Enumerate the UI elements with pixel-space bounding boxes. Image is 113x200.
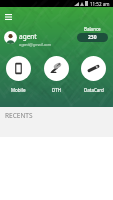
staticText: RECENTS [5, 111, 33, 120]
staticText: DTH [52, 87, 61, 93]
staticText: agent@gmail.com [19, 42, 52, 47]
button[interactable]: Menu [2, 11, 14, 23]
button[interactable]: DTH [44, 56, 69, 93]
staticText: 230 [88, 34, 97, 41]
staticText: 11:52 am [90, 1, 110, 7]
button[interactable]: DataCard [81, 56, 106, 93]
button[interactable]: Mobile [6, 56, 31, 93]
button[interactable]: Balance [77, 26, 108, 42]
staticText: Balance [84, 26, 101, 32]
staticText: DataCard [84, 87, 104, 93]
staticText: Mobile [11, 87, 26, 93]
staticText: agent [19, 32, 37, 41]
